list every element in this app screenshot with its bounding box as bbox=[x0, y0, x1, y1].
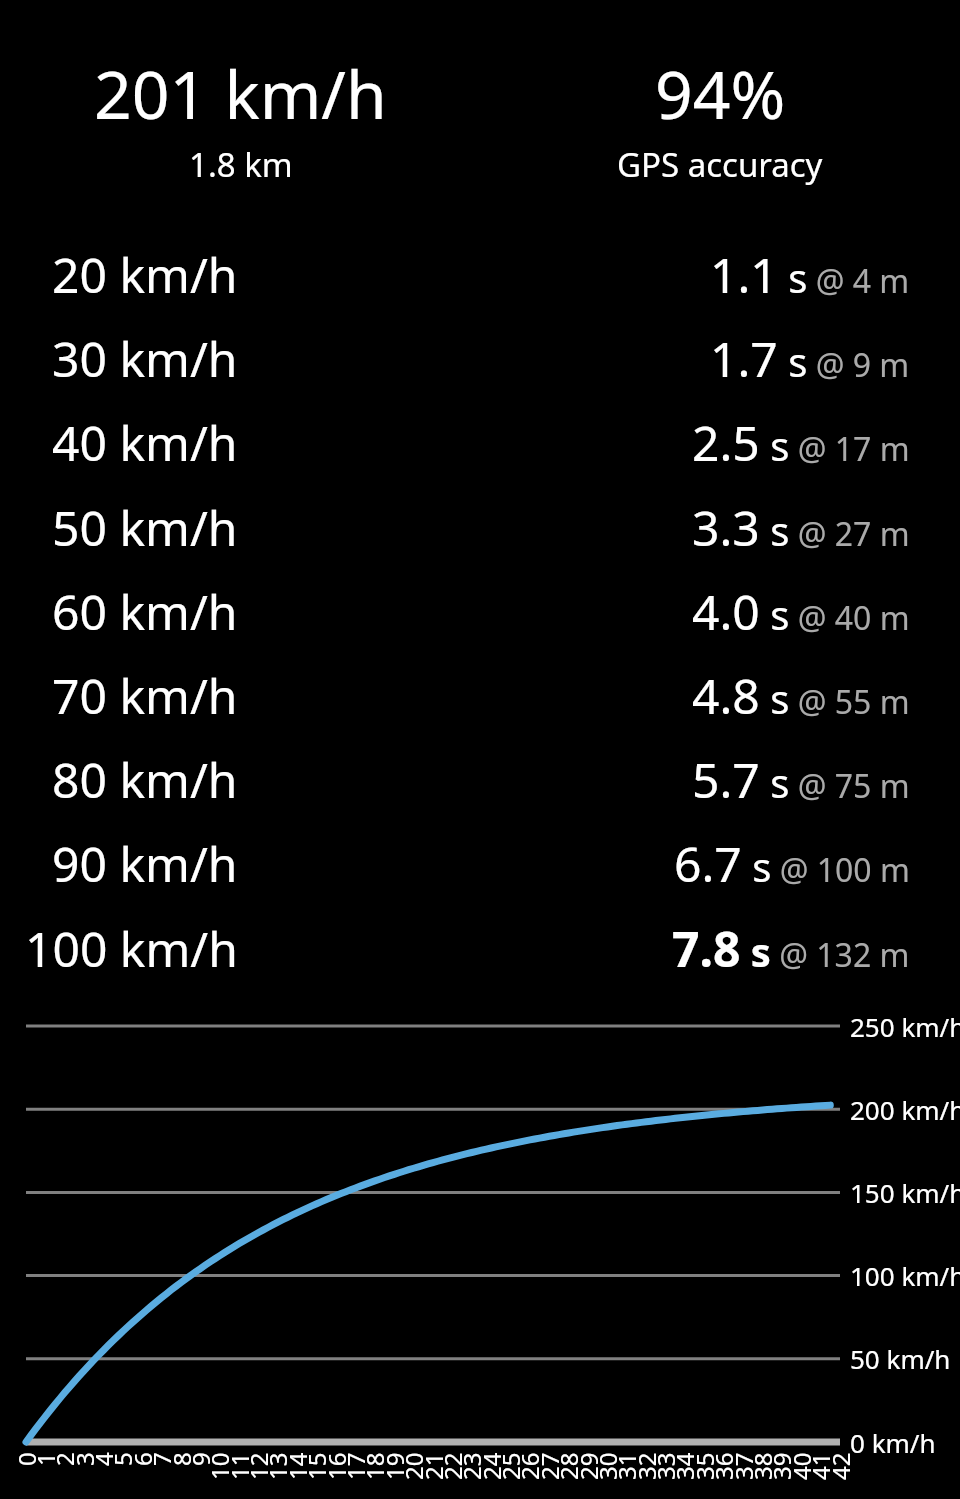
staticText: 90 km/h bbox=[52, 831, 238, 896]
staticText: 1.7 s @ 9 m bbox=[710, 326, 910, 391]
staticText: GPS accuracy bbox=[617, 142, 823, 187]
staticText: 7.8 s @ 132 m bbox=[672, 916, 910, 981]
staticText: 5.7 s @ 75 m bbox=[692, 747, 910, 812]
button[interactable]: 70 km/h bbox=[0, 653, 960, 737]
button[interactable]: 30 km/h bbox=[0, 316, 960, 400]
button[interactable]: 90 km/h bbox=[0, 821, 960, 905]
button[interactable]: 100 km/h bbox=[0, 906, 960, 990]
button[interactable]: 80 km/h bbox=[0, 737, 960, 821]
staticText: 100 km/h bbox=[25, 916, 238, 981]
staticText: 40 km/h bbox=[52, 410, 238, 475]
staticText: 1.1 s @ 4 m bbox=[710, 242, 910, 307]
button[interactable]: 201 km/h bbox=[0, 48, 480, 187]
staticText: 3.3 s @ 27 m bbox=[692, 495, 910, 560]
staticText: 4.8 s @ 55 m bbox=[692, 663, 910, 728]
staticText: 94% bbox=[655, 48, 786, 138]
button[interactable]: 50 km/h bbox=[0, 485, 960, 569]
staticText: 50 km/h bbox=[52, 495, 238, 560]
staticText: 201 km/h bbox=[94, 48, 387, 138]
button[interactable]: 94% bbox=[480, 48, 960, 187]
staticText: 6.7 s @ 100 m bbox=[674, 831, 910, 896]
button[interactable]: 40 km/h bbox=[0, 400, 960, 484]
staticText: 20 km/h bbox=[52, 242, 238, 307]
staticText: 60 km/h bbox=[52, 579, 238, 644]
staticText: 4.0 s @ 40 m bbox=[692, 579, 910, 644]
button[interactable]: 60 km/h bbox=[0, 569, 960, 653]
staticText: 70 km/h bbox=[52, 663, 238, 728]
staticText: 30 km/h bbox=[52, 326, 238, 391]
staticText: 2.5 s @ 17 m bbox=[692, 410, 910, 475]
button[interactable]: Speed over time chart bbox=[0, 1000, 960, 1460]
button[interactable]: 20 km/h bbox=[0, 232, 960, 316]
staticText: 1.8 km bbox=[189, 142, 293, 187]
staticText: 80 km/h bbox=[52, 747, 238, 812]
